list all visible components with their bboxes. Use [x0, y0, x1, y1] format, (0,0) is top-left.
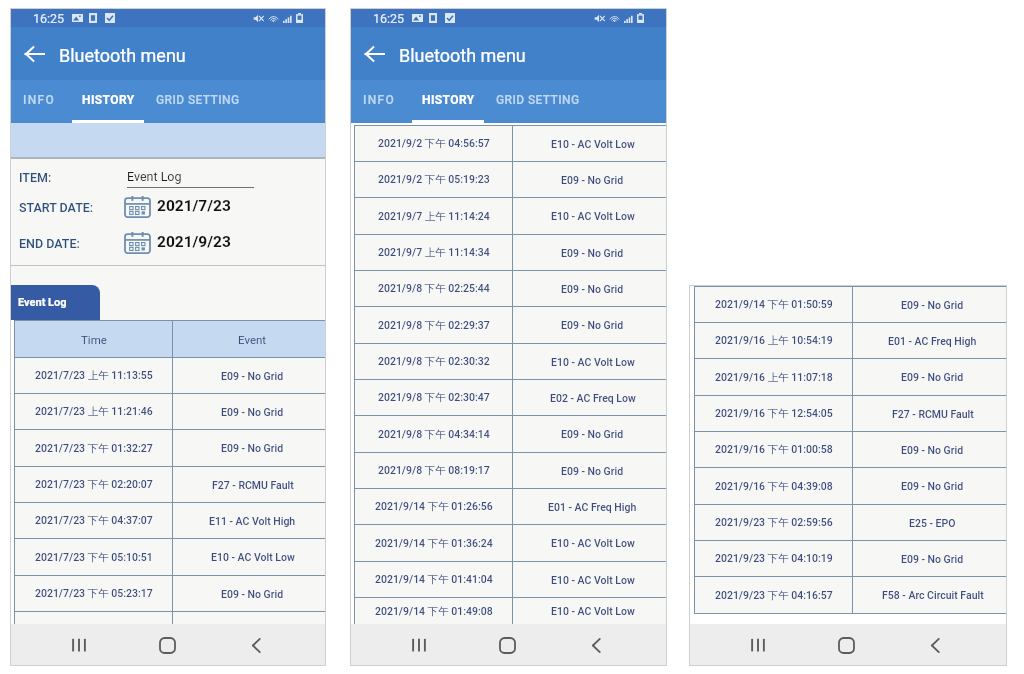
staticText: E09 - No Grid [561, 319, 624, 331]
staticText: 2021/9/7 上午 11:14:24 [378, 210, 490, 223]
staticText: 2021/7/23 下午 05:23:17 [35, 587, 153, 600]
button[interactable]: 2021/9/23 下午 04:16:57 [694, 577, 1006, 613]
button[interactable]: 2021/9/8 下午 08:19:17 [354, 453, 666, 488]
button[interactable]: GRID SETTING [152, 80, 244, 120]
button[interactable]: 2021/9/14 下午 01:41:04 [354, 562, 666, 597]
button[interactable]: Back [359, 41, 390, 66]
staticText: 2021/9/16 上午 10:54:19 [715, 334, 833, 347]
staticText: START DATE: [19, 200, 94, 215]
button[interactable]: Home [823, 625, 869, 665]
button[interactable]: 2021/9/8 下午 02:29:37 [354, 307, 666, 343]
button[interactable]: 2021/7/23 下午 01:32:27 [14, 430, 325, 466]
button[interactable]: GRID SETTING [492, 80, 584, 120]
button[interactable]: Pick end date [124, 232, 151, 254]
staticText: 2021/9/2 下午 04:56:57 [378, 137, 490, 150]
button[interactable]: 2021/9/8 下午 02:30:32 [354, 344, 666, 379]
staticText: E09 - No Grid [221, 588, 284, 600]
button[interactable]: 2021/9/16 下午 01:00:58 [694, 432, 1006, 467]
button[interactable]: HISTORY [72, 80, 145, 120]
staticText: E02 - AC Freq Low [550, 392, 636, 404]
button[interactable]: 2021/9/8 下午 02:30:47 [354, 380, 666, 415]
staticText: E09 - No Grid [901, 480, 964, 492]
button[interactable]: 2021/9/16 下午 12:54:05 [694, 396, 1006, 431]
button[interactable]: INFO [20, 80, 57, 120]
staticText: E01 - AC Freq High [888, 335, 977, 347]
button[interactable] [14, 612, 325, 624]
staticText: 2021/9/14 下午 01:36:24 [375, 537, 493, 550]
staticText: F27 - RCMU Fault [212, 479, 294, 491]
staticText: E10 - AC Volt Low [551, 537, 635, 549]
staticText: 2021/9/2 下午 05:19:23 [378, 173, 490, 186]
staticText: Bluetooth menu [399, 45, 526, 66]
staticText: E09 - No Grid [901, 553, 964, 565]
staticText: 2021/7/23 上午 11:13:55 [35, 369, 153, 382]
staticText: 2021/7/23 上午 11:21:46 [35, 405, 153, 418]
staticText: Time [81, 333, 107, 346]
staticText: 2021/9/8 下午 02:30:47 [378, 391, 490, 404]
button[interactable]: 2021/9/7 上午 11:14:34 [354, 235, 666, 270]
button[interactable]: 2021/7/23 下午 04:37:07 [14, 503, 325, 538]
staticText: GRID SETTING [496, 93, 580, 107]
button[interactable]: 2021/9/14 下午 01:26:56 [354, 489, 666, 524]
staticText: 2021/9/8 下午 08:19:17 [378, 464, 490, 477]
button[interactable]: HISTORY [412, 80, 485, 120]
button[interactable]: 2021/7/23 上午 11:21:46 [14, 394, 325, 429]
button[interactable]: Back [912, 625, 958, 665]
staticText: E09 - No Grid [561, 428, 624, 440]
staticText: 2021/9/8 下午 04:34:14 [378, 428, 490, 441]
button[interactable]: Back [233, 625, 279, 665]
staticText: E09 - No Grid [221, 442, 284, 454]
button[interactable]: Event Log [11, 285, 100, 320]
button[interactable]: 2021/7/23 下午 05:10:51 [14, 539, 325, 575]
staticText: E10 - AC Volt Low [551, 574, 635, 586]
button[interactable]: Recents [735, 625, 781, 665]
button[interactable]: INFO [360, 80, 397, 120]
button[interactable]: 2021/9/16 上午 11:07:18 [694, 359, 1006, 395]
button[interactable]: Back [573, 625, 619, 665]
button[interactable]: 2021/9/8 下午 02:25:44 [354, 271, 666, 306]
button[interactable]: 2021/7/23 上午 11:13:55 [14, 358, 325, 393]
button[interactable]: 2021/9/7 上午 11:14:24 [354, 198, 666, 234]
button[interactable]: 2021/9/14 下午 01:36:24 [354, 525, 666, 561]
staticText: 2021/9/23 下午 04:10:19 [715, 552, 833, 565]
staticText: 2021/9/7 上午 11:14:34 [378, 246, 490, 259]
staticText: E09 - No Grid [561, 174, 624, 186]
staticText: 2021/9/16 下午 01:00:58 [715, 443, 833, 456]
button[interactable]: Home [144, 625, 190, 665]
button[interactable]: 2021/9/2 下午 05:19:23 [354, 162, 666, 197]
staticText: 2021/9/23 [157, 233, 231, 251]
button[interactable]: 2021/7/23 下午 05:23:17 [14, 576, 325, 611]
button[interactable]: Recents [396, 625, 442, 665]
staticText: E09 - No Grid [901, 444, 964, 456]
button[interactable]: Event Log [127, 169, 253, 184]
button[interactable]: 2021/9/14 下午 01:50:59 [694, 287, 1006, 322]
button[interactable]: Home [484, 625, 530, 665]
staticText: 2021/9/23 下午 04:16:57 [715, 589, 833, 602]
button[interactable]: 2021/9/8 下午 04:34:14 [354, 416, 666, 452]
button[interactable]: 2021/9/16 上午 10:54:19 [694, 323, 1006, 358]
staticText: E10 - AC Volt Low [211, 551, 295, 563]
staticText: E10 - AC Volt Low [551, 138, 635, 150]
button[interactable]: 2021/9/14 下午 01:49:08 [354, 598, 666, 624]
button[interactable]: 2021/9/23 下午 04:10:19 [694, 541, 1006, 576]
button[interactable]: 2021/9/2 下午 04:56:57 [354, 126, 666, 161]
staticText: E09 - No Grid [561, 247, 624, 259]
staticText: 2021/9/8 下午 02:29:37 [378, 319, 490, 332]
staticText: 2021/7/23 下午 04:37:07 [35, 514, 153, 527]
staticText: E09 - No Grid [561, 283, 624, 295]
staticText: F27 - RCMU Fault [892, 408, 974, 420]
staticText: 2021/9/16 下午 04:39:08 [715, 480, 833, 493]
staticText: E10 - AC Volt Low [551, 210, 635, 222]
button[interactable]: 2021/7/23 下午 02:20:07 [14, 467, 325, 502]
staticText: 2021/9/16 下午 12:54:05 [715, 407, 833, 420]
button[interactable]: Back [19, 41, 50, 66]
button[interactable]: Pick start date [124, 196, 151, 218]
staticText: E10 - AC Volt Low [551, 605, 635, 617]
staticText: E09 - No Grid [221, 370, 284, 382]
button[interactable]: 2021/9/16 下午 04:39:08 [694, 468, 1006, 504]
staticText: 2021/7/23 下午 02:20:07 [35, 478, 153, 491]
staticText: E09 - No Grid [561, 465, 624, 477]
staticText: 2021/9/14 下午 01:50:59 [715, 298, 833, 311]
button[interactable]: 2021/9/23 下午 02:59:56 [694, 505, 1006, 540]
button[interactable]: Recents [56, 625, 102, 665]
